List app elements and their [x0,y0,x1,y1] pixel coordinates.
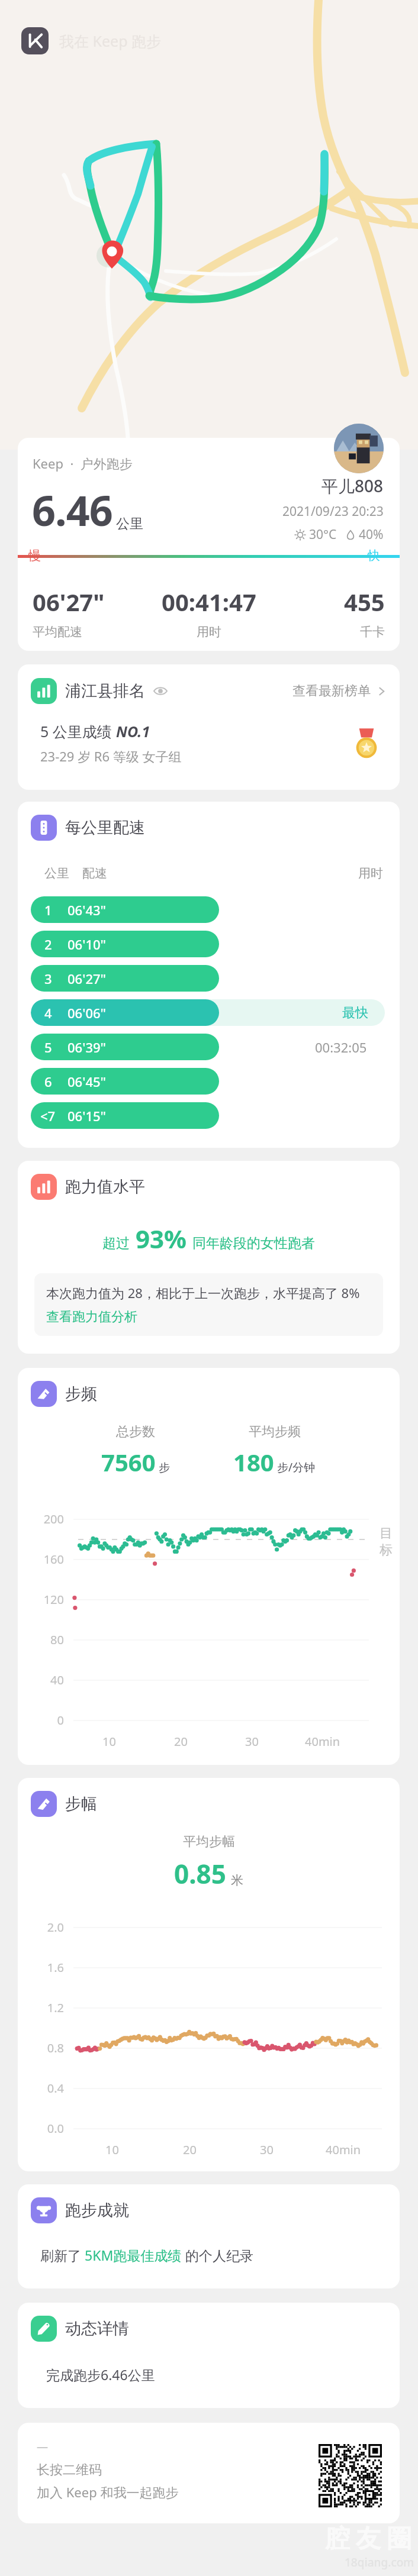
staticText: 米 [231,1873,243,1888]
staticText: 1.6 [18,1960,64,1975]
staticText: 06'39" [67,1038,106,1056]
staticText: 平均步频 [249,1423,301,1440]
staticText: 步频 [65,1384,97,1404]
staticText: 2021/09/23 20:23 [282,503,384,520]
staticText: 配速 [82,866,107,881]
staticText: 6 [44,1073,52,1090]
staticText: 加入 Keep 和我一起跑步 [37,2483,179,2501]
button[interactable]: 查看跑力值分析 [46,1309,137,1325]
staticText: 18qiang.com [345,2555,414,2570]
staticText: Keep · 户外跑步 [33,454,133,472]
staticText: 06'27" [67,970,106,987]
staticText: 本次跑力值为 28，相比于上一次跑步，水平提高了 8% [46,1284,360,1302]
staticText: 查看跑力值分析 [46,1309,137,1325]
staticText: 06'43" [67,901,106,919]
staticText: 步/分钟 [277,1460,316,1475]
staticText: 步 [159,1461,170,1475]
staticText: 06'06" [67,1004,106,1022]
staticText: 0.4 [18,2080,64,2096]
staticText: 3 [44,970,52,987]
button[interactable]: 浦江县排名 [18,664,400,718]
staticText: 93% [136,1222,187,1255]
staticText: 7560 [101,1446,156,1478]
staticText: — [37,2439,49,2455]
staticText: 40min [326,2142,361,2158]
staticText: 腔友圈 [322,2523,414,2555]
staticText: 4 [44,1004,52,1022]
staticText: 80 [18,1632,64,1648]
staticText: 公里 [116,515,143,532]
staticText: 06'45" [67,1073,106,1090]
staticText: 0 [18,1712,64,1728]
staticText: 23-29 岁 R6 等级 女子组 [40,747,182,765]
staticText: 06'15" [67,1107,106,1125]
staticText: 最快 [342,1005,368,1021]
staticText: 5 [44,1038,52,1056]
staticText: 06'27" [33,586,105,618]
staticText: 40min [305,1734,340,1749]
staticText: 千卡 [360,624,385,640]
staticText: 00:32:05 [315,1038,367,1056]
staticText: 10 [102,1734,116,1749]
staticText: 0.8 [18,2040,64,2056]
staticText: 总步数 [116,1423,155,1440]
staticText: 2.0 [18,1919,64,1935]
staticText: 2 [44,935,52,953]
staticText: 0.0 [18,2120,64,2136]
staticText: 目 [380,1525,393,1542]
staticText: NO.1 [116,721,150,741]
button[interactable]: Keep logo [21,27,162,54]
staticText: 06'10" [67,935,106,953]
staticText: <7 [40,1107,56,1125]
staticText: 跑力值水平 [65,1177,145,1197]
other: Visibility [153,684,168,698]
staticText: 完成跑步6.46公里 [46,2365,155,2384]
staticText: 455 [344,586,385,618]
staticText: 刷新了 [40,2246,85,2264]
staticText: 160 [18,1551,64,1567]
staticText: 00:41:47 [162,586,256,618]
staticText: 40% [359,526,384,543]
staticText: 快 [368,548,380,563]
staticText: 20 [174,1734,188,1749]
staticText: 动态详情 [65,2319,129,2339]
staticText: 30°C [309,526,337,543]
staticText: 1.2 [18,2000,64,2016]
staticText: 120 [18,1592,64,1607]
staticText: 慢 [28,548,41,563]
staticText: 步幅 [65,1794,97,1814]
staticText: 5 公里成绩 [40,721,116,741]
staticText: 0.85 [174,1856,226,1891]
staticText: 平均步幅 [183,1833,235,1850]
staticText: 查看最新榜单 [292,683,371,699]
button[interactable]: QR code [319,2444,382,2507]
staticText: 用时 [358,866,383,881]
staticText: 浦江县排名 [65,681,145,701]
staticText: 公里 [44,866,69,881]
other: Keep logo [21,27,49,54]
button[interactable]: Profile photo [334,424,384,473]
staticText: 40 [18,1672,64,1688]
staticText: 200 [18,1511,64,1527]
staticText: 我在 Keep 跑步 [59,31,162,51]
staticText: 平均配速 [33,624,82,640]
staticText: 20 [183,2142,197,2158]
staticText: 每公里配速 [65,818,145,838]
staticText: 10 [105,2142,119,2158]
staticText: 30 [260,2142,274,2158]
staticText: 5KM跑最佳成绩 [85,2246,182,2264]
staticText: 跑步成就 [65,2200,129,2220]
staticText: 1 [44,901,52,919]
staticText: 6.46 [32,482,112,538]
staticText: 长按二维码 [37,2462,102,2478]
staticText: 的个人纪录 [182,2246,253,2264]
staticText: 30 [245,1734,259,1749]
staticText: 超过 [102,1235,130,1252]
staticText: 同年龄段的女性跑者 [192,1235,315,1252]
staticText: 标 [380,1542,393,1558]
staticText: 平儿808 [321,474,384,497]
staticText: 用时 [197,624,221,640]
staticText: 180 [233,1446,274,1478]
